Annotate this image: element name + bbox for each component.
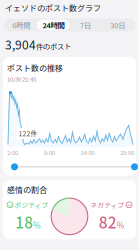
staticText: 2:00 [7,148,18,157]
staticText: 7日 [80,20,91,30]
staticText: ネガティブ [90,200,124,210]
staticText: 感情の割合 [7,184,47,195]
button[interactable]: 6時間 [5,20,37,30]
staticText: 14:00 [80,148,94,157]
staticText: 3,904 [5,35,36,53]
button[interactable]: 24時間 [37,20,69,30]
staticText: ポスト数の推移 [7,62,63,73]
staticText: 122件 [18,129,37,138]
staticText: 件のポスト [36,41,71,51]
staticText: 20:00 [120,148,134,157]
button[interactable]: 7日 [69,20,102,30]
staticText: 82 [99,211,117,233]
staticText: % [117,219,124,231]
staticText: 18 [15,211,33,233]
staticText: ポジティブ [14,200,48,210]
staticText: % [33,219,40,231]
staticText: イェソドのポスト数グラフ [5,2,101,14]
button[interactable]: Range end [131,163,138,170]
staticText: 8:00 [44,148,55,157]
staticText: 6時間 [12,20,30,30]
staticText: 30日 [110,20,125,30]
button[interactable]: 30日 [102,20,134,30]
staticText: 24時間 [42,20,64,30]
staticText: 10/30 21:45 [7,74,36,83]
button[interactable]: Range start [11,163,18,170]
